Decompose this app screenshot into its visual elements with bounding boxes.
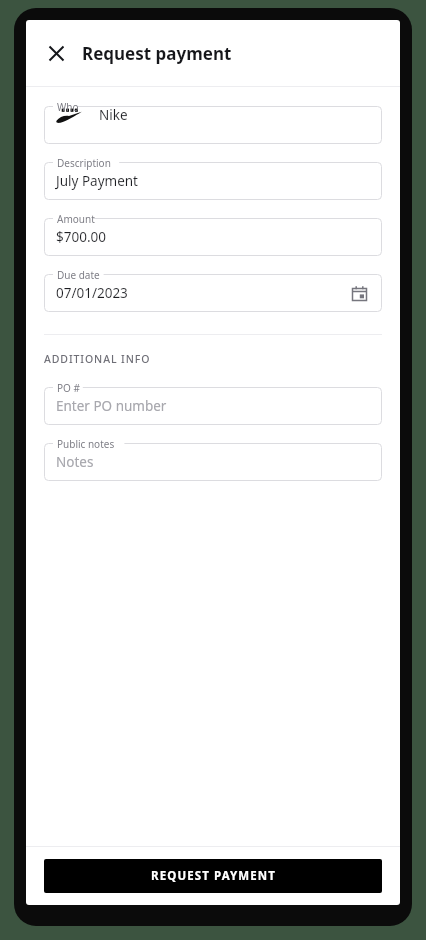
- staticText: PO #: [57, 381, 80, 395]
- staticText: Description: [57, 156, 111, 170]
- staticText: Who: [57, 100, 79, 114]
- staticText: Nike: [99, 106, 128, 124]
- staticText: July Payment: [56, 172, 138, 190]
- staticText: ADDITIONAL INFO: [44, 352, 151, 366]
- staticText: Public notes: [57, 437, 115, 451]
- button[interactable]: $700.00: [44, 212, 382, 256]
- staticText: Due date: [57, 268, 100, 282]
- button[interactable]: Notes: [44, 437, 382, 481]
- button[interactable]: Close: [38, 35, 74, 71]
- staticText: Request payment: [82, 42, 232, 65]
- button[interactable]: Enter PO number: [44, 381, 382, 425]
- staticText: 07/01/2023: [56, 284, 128, 302]
- button[interactable]: Pick due date: [346, 280, 372, 306]
- staticText: Amount: [57, 212, 95, 226]
- button[interactable]: 07/01/2023: [44, 268, 382, 312]
- button[interactable]: Nike: [44, 100, 382, 144]
- button[interactable]: REQUEST PAYMENT: [44, 859, 382, 893]
- staticText: Notes: [56, 453, 94, 471]
- button[interactable]: July Payment: [44, 156, 382, 200]
- staticText: Enter PO number: [56, 397, 167, 415]
- staticText: REQUEST PAYMENT: [151, 868, 276, 884]
- staticText: $700.00: [56, 228, 106, 246]
